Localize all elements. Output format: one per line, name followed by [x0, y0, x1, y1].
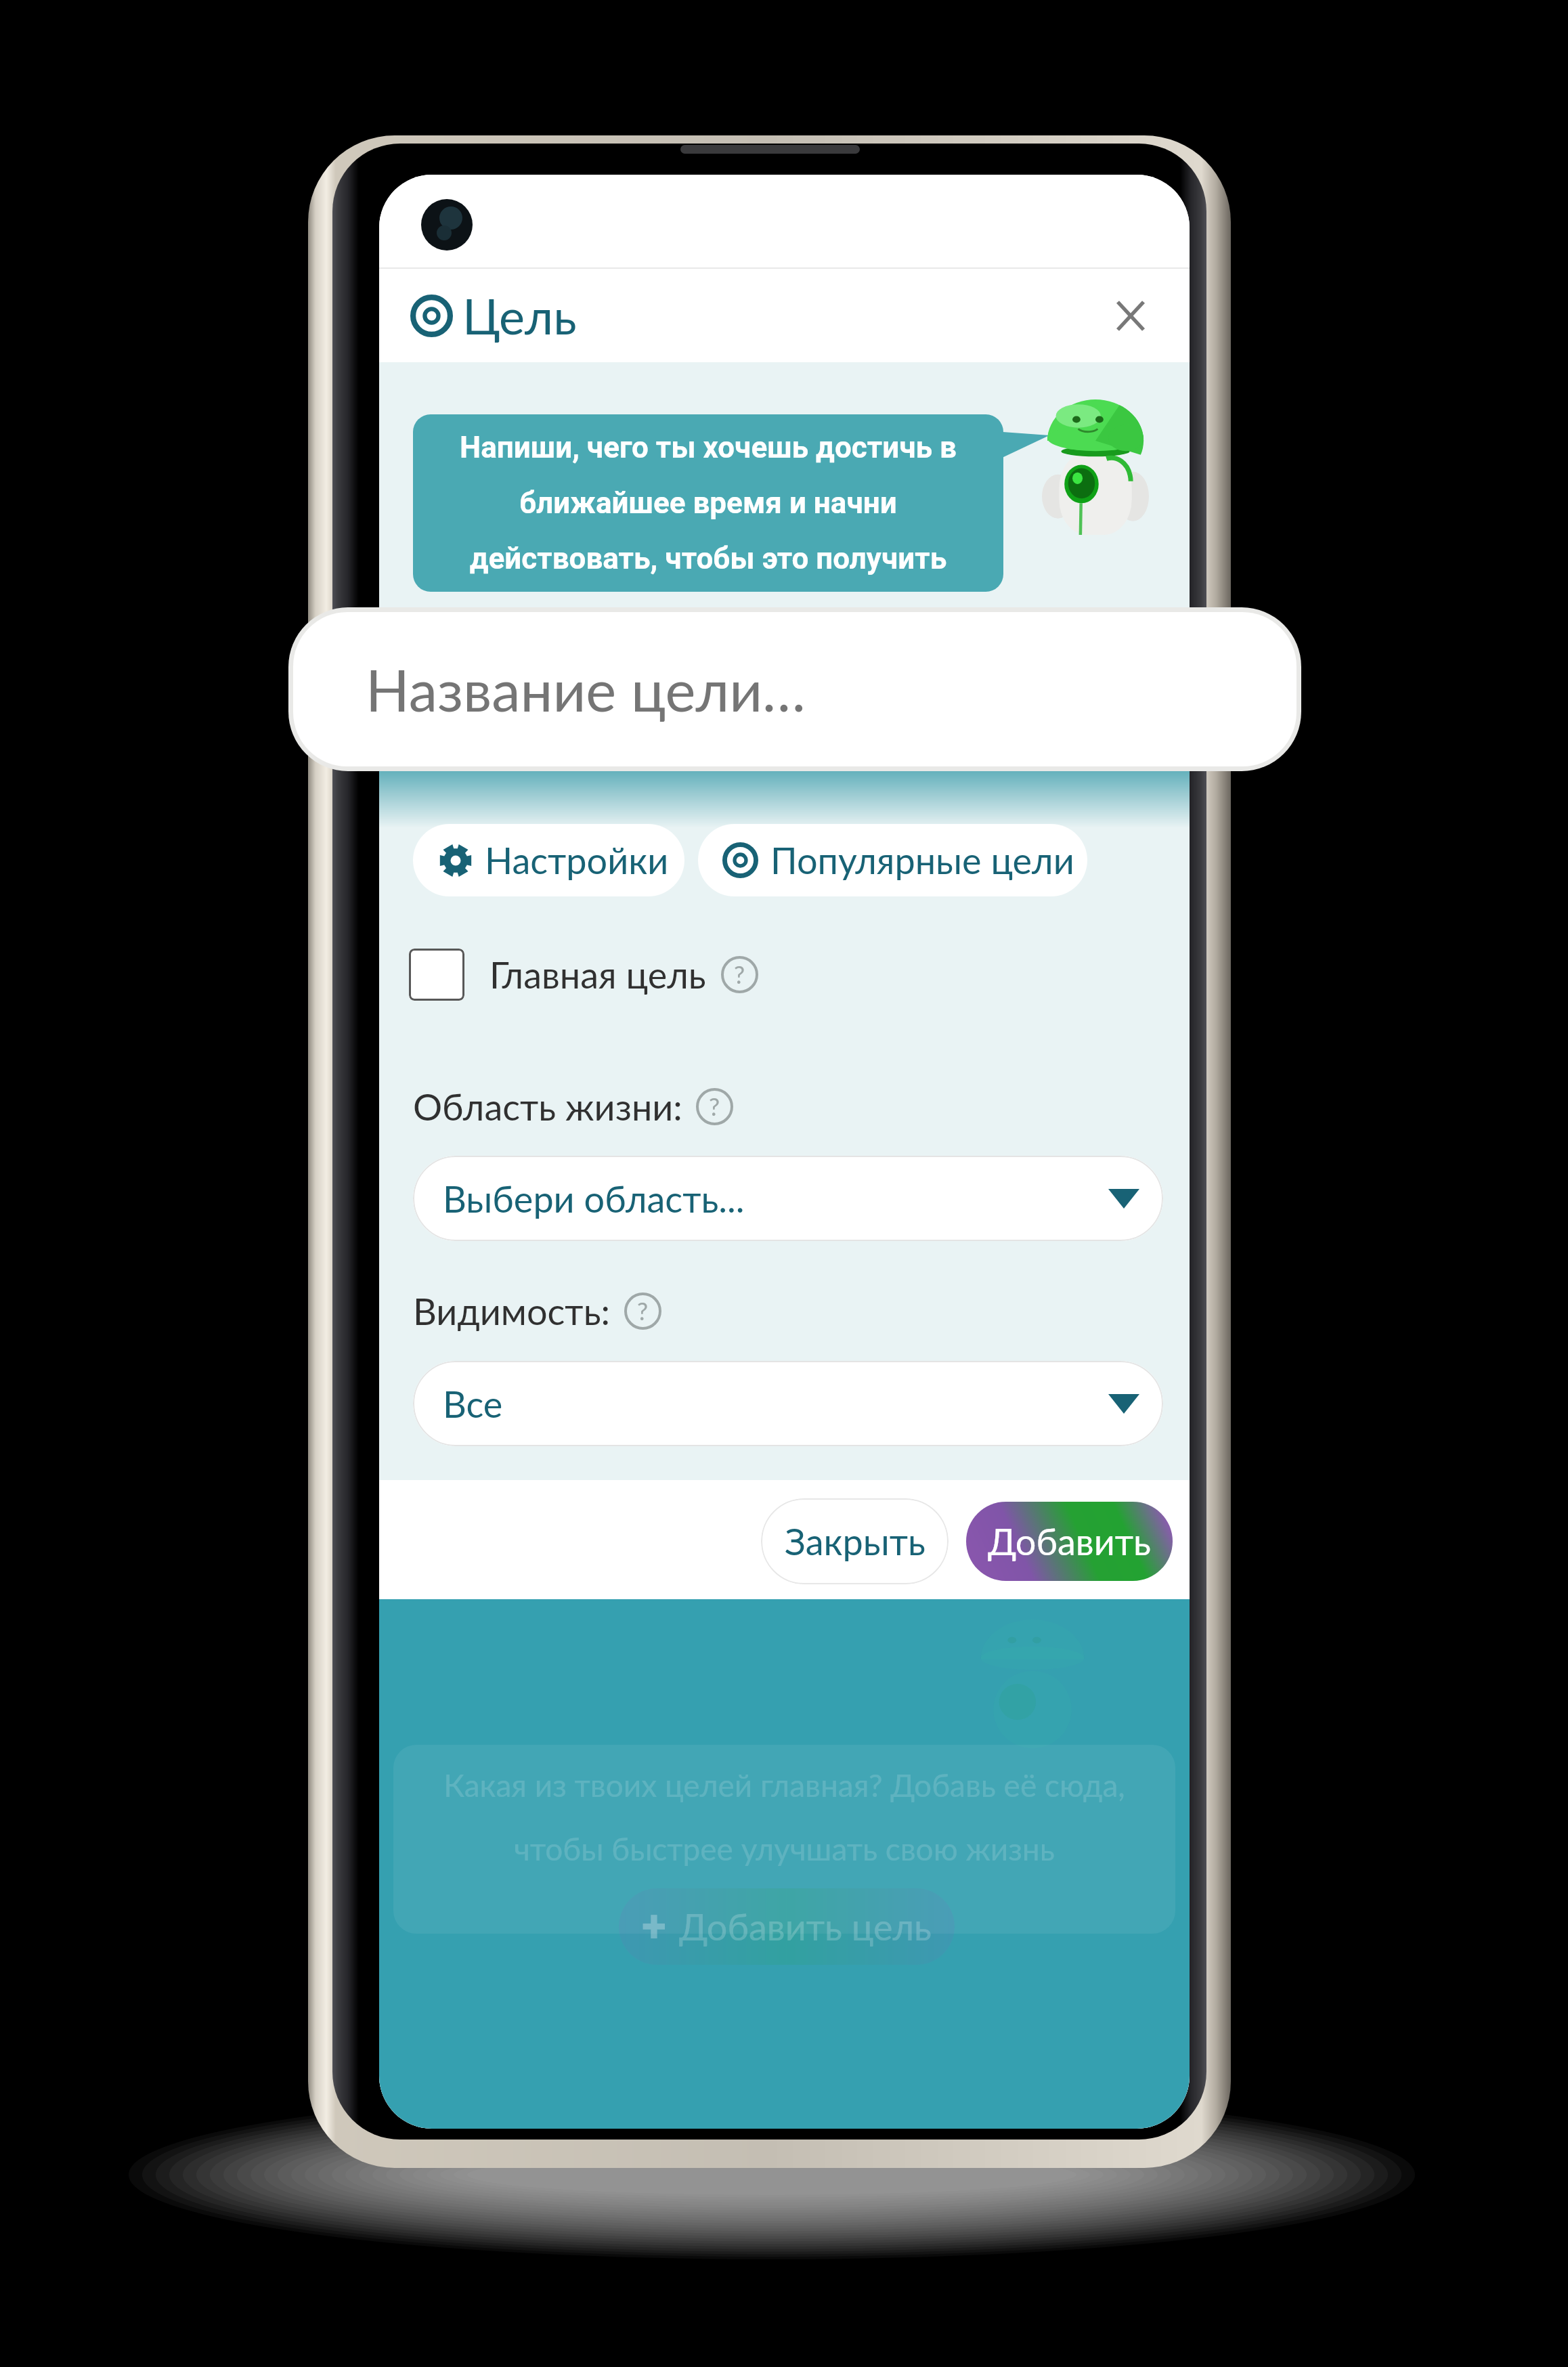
staticText: Все	[443, 1382, 503, 1426]
staticText: Добавить	[988, 1519, 1151, 1563]
staticText: Закрыть	[785, 1519, 925, 1563]
button[interactable]: Выбери область...	[413, 1156, 1163, 1241]
button[interactable]: Настройки	[413, 824, 684, 896]
staticText: Название цели…	[366, 655, 806, 724]
button[interactable]: Название цели…	[293, 612, 1297, 766]
staticText: Популярные цели	[770, 838, 1074, 882]
staticText: Главная цель	[489, 953, 706, 997]
staticText: Напиши, чего ты хочешь достичь в ближайш…	[460, 430, 957, 576]
staticText: ?	[734, 959, 745, 989]
staticText: Настройки	[485, 838, 669, 882]
button[interactable]: Главная цель	[409, 942, 758, 1007]
button[interactable]: Добавить	[966, 1502, 1173, 1581]
staticText: +	[642, 1901, 667, 1953]
staticText: Видимость:	[413, 1289, 611, 1333]
staticText: Какая из твоих целей главная? Добавь её …	[393, 1766, 1175, 1867]
staticText: ?	[709, 1091, 720, 1121]
button[interactable]: Закрыть	[761, 1498, 949, 1584]
staticText: Выбери область...	[443, 1177, 745, 1221]
button[interactable]: Закрыть	[1102, 286, 1160, 345]
staticText: Цель	[462, 286, 577, 345]
button[interactable]: Все	[413, 1361, 1163, 1446]
staticText: Добавить цель	[679, 1905, 932, 1949]
button[interactable]: Популярные цели	[698, 824, 1087, 896]
staticText: ?	[637, 1296, 649, 1325]
button[interactable]: +	[619, 1888, 955, 1965]
staticText: Область жизни:	[413, 1085, 682, 1129]
